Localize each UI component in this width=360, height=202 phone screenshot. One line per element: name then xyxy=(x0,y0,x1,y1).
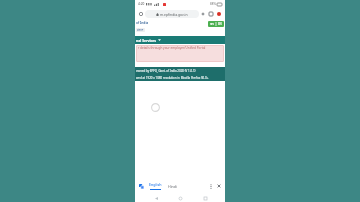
staticText: owned by EPFO, Govt. of India 2020 (V 1.… xyxy=(136,69,196,73)
button[interactable]: Home xyxy=(176,194,184,202)
staticText: पात्र | EN xyxy=(210,22,222,26)
button[interactable]: nal Services xyxy=(135,36,225,44)
button[interactable]: New tab xyxy=(199,10,207,18)
button[interactable]: Switch tabs xyxy=(207,10,215,18)
button[interactable]: English xyxy=(148,182,163,190)
staticText: Hindi xyxy=(168,184,177,189)
button[interactable]: Google Translate xyxy=(137,182,145,190)
button[interactable]: पात्र | EN xyxy=(208,21,224,27)
button[interactable]: संगठन xyxy=(136,28,145,32)
staticText: English xyxy=(149,182,162,187)
button[interactable]: More options xyxy=(207,182,215,190)
button[interactable]: Recent apps xyxy=(201,194,209,202)
button[interactable]: Home xyxy=(137,10,145,18)
button[interactable]: Account xyxy=(215,10,223,18)
staticText: 4:20 xyxy=(138,2,145,6)
button[interactable]: Hindi xyxy=(167,183,178,190)
staticText: wed at 1920 x 1080 resolution in Mozilla… xyxy=(136,76,209,80)
button[interactable]: Back xyxy=(152,194,160,202)
staticText: m.epfindia.gov.in xyxy=(160,12,188,17)
staticText: 88% xyxy=(210,2,216,6)
staticText: nal Services xyxy=(136,38,156,43)
staticText: of India xyxy=(136,21,149,25)
button[interactable]: Close xyxy=(215,182,223,190)
staticText: r details through your employer/Unified … xyxy=(138,46,206,50)
staticText: संगठन xyxy=(137,28,144,32)
button[interactable]: m.epfindia.gov.in xyxy=(145,10,199,18)
